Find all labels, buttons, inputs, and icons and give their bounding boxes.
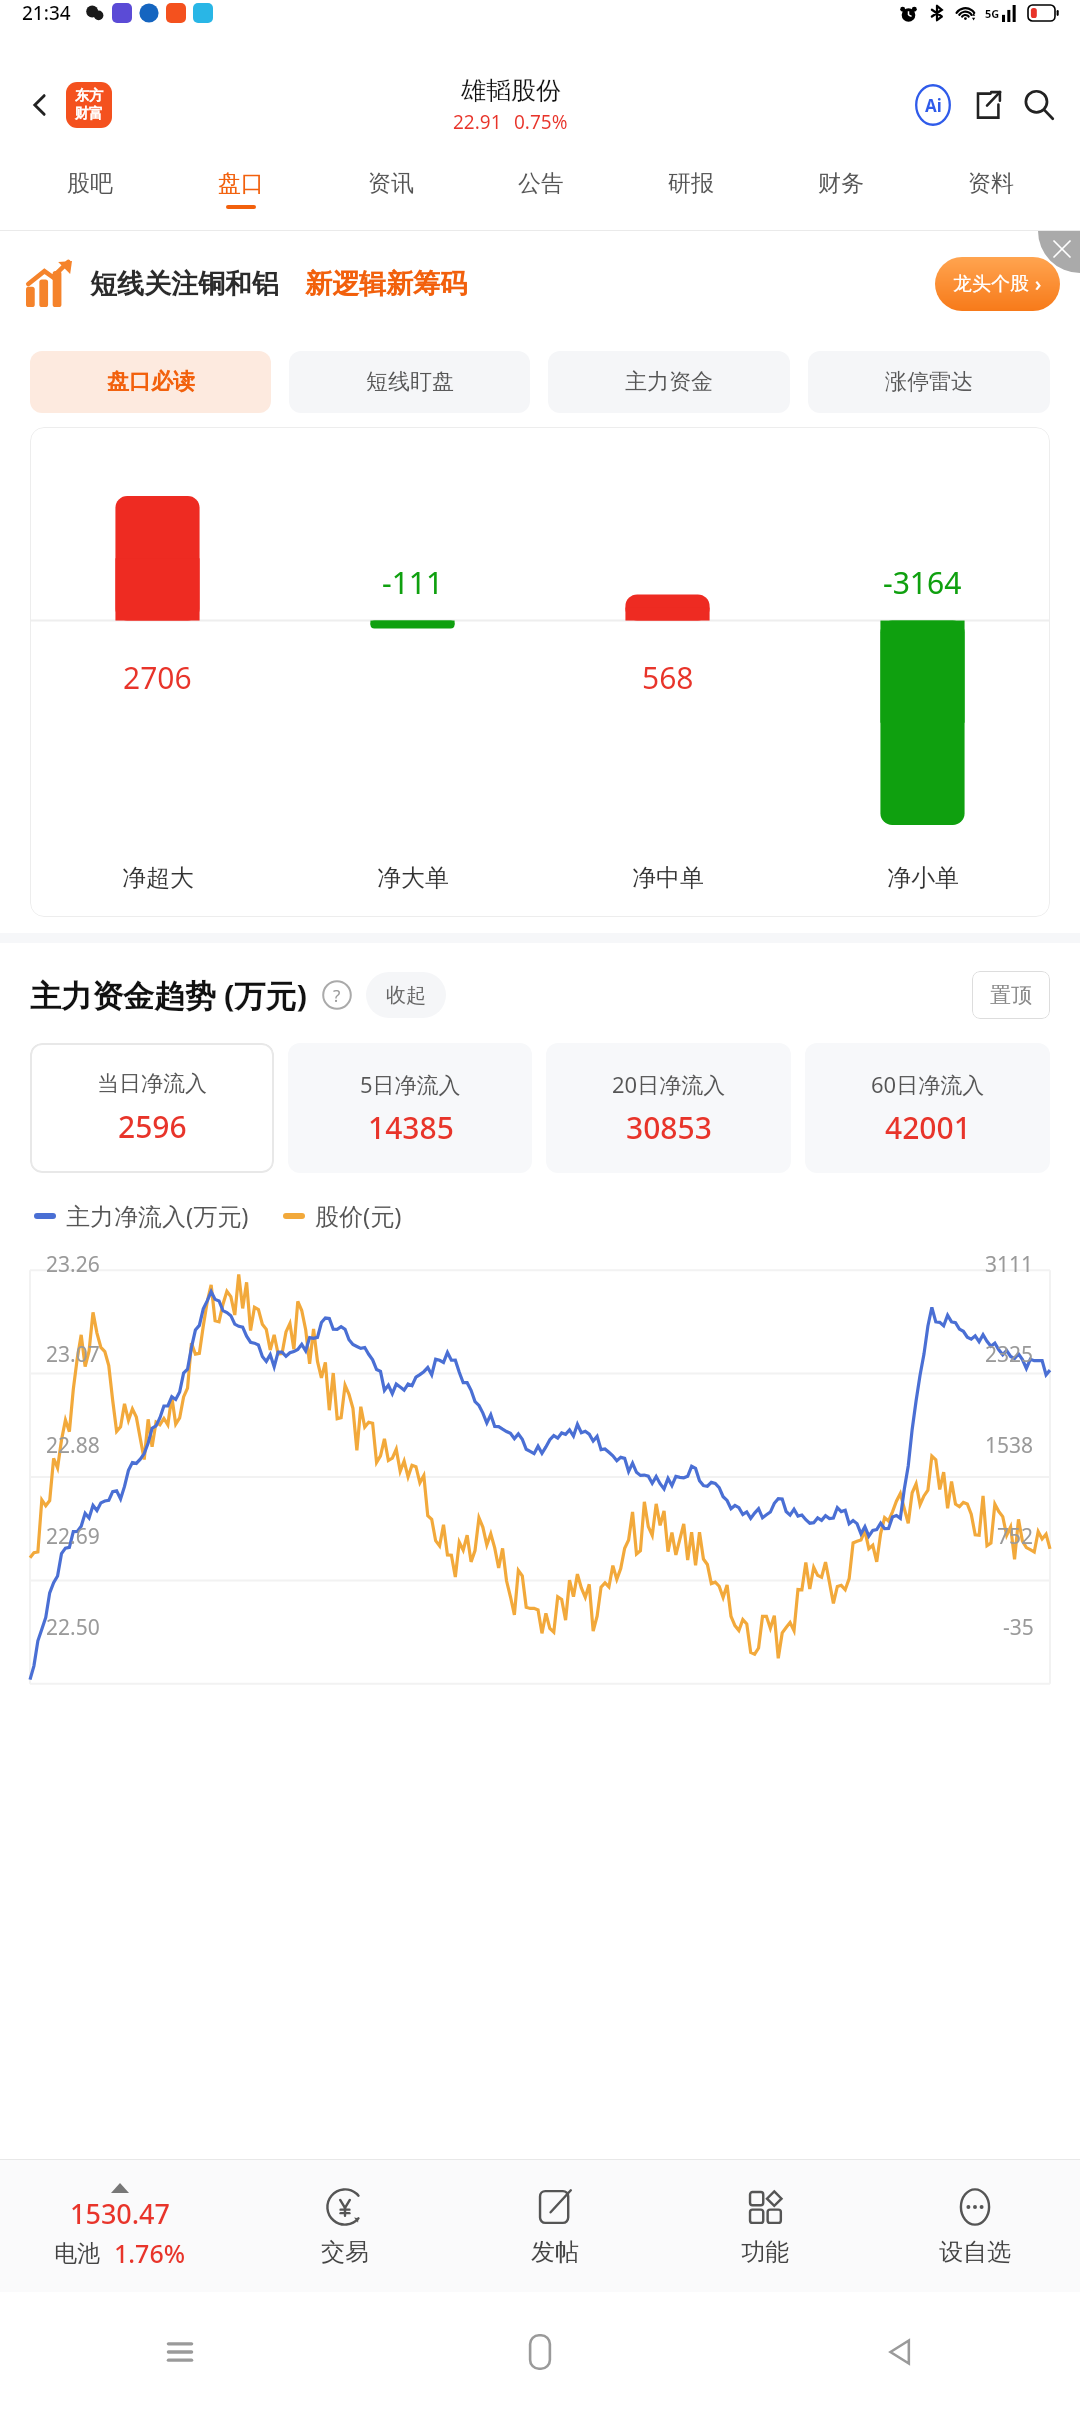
button[interactable]: 置顶 (972, 971, 1050, 1019)
button[interactable]: Share (964, 82, 1010, 128)
staticText: 568 (642, 657, 694, 698)
staticText: 功能 (741, 2237, 789, 2267)
button[interactable]: 东方财富 (66, 82, 112, 128)
staticText: 21:34 (22, 0, 71, 26)
staticText: 发帖 (531, 2237, 579, 2267)
staticText: 净超大 (122, 863, 194, 893)
staticText: 盘口 (218, 169, 264, 198)
button[interactable]: 5日净流入 (288, 1043, 532, 1173)
staticText: 净中单 (632, 863, 704, 893)
staticText: 资料 (968, 169, 1014, 198)
staticText: -3164 (883, 562, 962, 603)
staticText: 1.76% (114, 2236, 186, 2270)
staticText: 净大单 (377, 863, 449, 893)
staticText: 置顶 (990, 982, 1032, 1008)
button[interactable]: 短线盯盘 (289, 351, 530, 413)
staticText: 短线关注铜和铝 (90, 267, 279, 301)
button[interactable]: 盘口必读 (30, 351, 271, 413)
button[interactable]: Back (18, 83, 62, 127)
staticText: 盘口必读 (107, 368, 195, 396)
staticText: 1538 (985, 1431, 1034, 1460)
staticText: 1530.47 (70, 2195, 171, 2232)
button[interactable]: 收起 (366, 972, 446, 1018)
staticText: 龙头个股 (953, 272, 1029, 296)
staticText: 净小单 (887, 863, 959, 893)
staticText: 23.26 (46, 1250, 100, 1279)
staticText: 30853 (626, 1107, 712, 1148)
staticText: 交易 (321, 2237, 369, 2267)
staticText: 22.69 (46, 1522, 100, 1551)
staticText: 短线盯盘 (366, 368, 454, 396)
button[interactable]: Close (1038, 231, 1080, 273)
staticText: 5日净流入 (360, 1069, 461, 1099)
staticText: 5G (985, 6, 1000, 21)
staticText: 23.07 (46, 1340, 100, 1369)
staticText: 0.75% (514, 109, 568, 135)
staticText: 主力资金 (625, 368, 713, 396)
staticText: 东方 (75, 87, 103, 105)
staticText: 涨停雷达 (885, 368, 973, 396)
staticText: 3111 (985, 1250, 1034, 1279)
staticText: 电池 (54, 2239, 100, 2268)
staticText: 60日净流入 (871, 1069, 985, 1099)
staticText: 主力资金趋势 (万元) (30, 974, 308, 1016)
button[interactable]: 设自选 (870, 2160, 1080, 2292)
staticText: -111 (382, 562, 444, 603)
staticText: 752 (997, 1522, 1034, 1551)
button[interactable]: 涨停雷达 (808, 351, 1050, 413)
button[interactable]: Help (322, 980, 352, 1010)
button[interactable]: Back (720, 2292, 1080, 2412)
button[interactable]: 公告 (466, 148, 616, 230)
button[interactable]: 当日净流入 (30, 1043, 274, 1173)
staticText: -35 (1003, 1613, 1034, 1642)
staticText: 22.91 (453, 109, 502, 135)
button[interactable]: 财务 (766, 148, 916, 230)
staticText: 20日净流入 (612, 1069, 726, 1099)
staticText: 22.50 (46, 1613, 100, 1642)
button[interactable]: 发帖 (450, 2160, 660, 2292)
button[interactable]: 交易 (240, 2160, 450, 2292)
button[interactable]: 2706 (30, 427, 1050, 917)
staticText: › (1035, 271, 1042, 297)
button[interactable]: 股吧 (14, 148, 165, 230)
button[interactable]: Home (360, 2292, 720, 2412)
staticText: 股价(元) (315, 1199, 402, 1232)
button[interactable]: 1530.47 (0, 2160, 240, 2292)
staticText: 收起 (386, 983, 426, 1008)
staticText: 当日净流入 (97, 1070, 207, 1098)
staticText: 研报 (668, 169, 714, 198)
button[interactable]: Recents (0, 2292, 360, 2412)
staticText: 财富 (75, 105, 103, 123)
staticText: 22.88 (46, 1431, 100, 1460)
button[interactable]: 龙头个股 (935, 257, 1060, 311)
button[interactable]: 资料 (916, 148, 1066, 230)
staticText: 财务 (818, 169, 864, 198)
staticText: 主力净流入(万元) (66, 1199, 249, 1232)
staticText: 14385 (368, 1107, 454, 1148)
button[interactable]: 盘口 (165, 148, 316, 230)
staticText: 新逻辑新筹码 (305, 267, 467, 301)
button[interactable]: 60日净流入 (805, 1043, 1050, 1173)
staticText: ? (333, 984, 341, 1007)
staticText: 公告 (518, 169, 564, 198)
button[interactable]: 功能 (660, 2160, 870, 2292)
staticText: 雄韬股份 (461, 75, 561, 106)
staticText: 42001 (885, 1107, 971, 1148)
button[interactable]: Search (1016, 82, 1062, 128)
staticText: 股吧 (67, 169, 113, 198)
button[interactable]: 20日净流入 (546, 1043, 791, 1173)
staticText: 2706 (123, 657, 192, 698)
staticText: 资讯 (368, 169, 414, 198)
staticText: 2596 (118, 1106, 187, 1147)
button[interactable]: 研报 (616, 148, 766, 230)
staticText: 设自选 (939, 2237, 1011, 2267)
button[interactable]: 主力资金 (548, 351, 790, 413)
button[interactable]: 资讯 (316, 148, 466, 230)
button[interactable]: AI (910, 82, 956, 128)
staticText: 2325 (985, 1340, 1034, 1369)
staticText: Ai (925, 94, 942, 117)
